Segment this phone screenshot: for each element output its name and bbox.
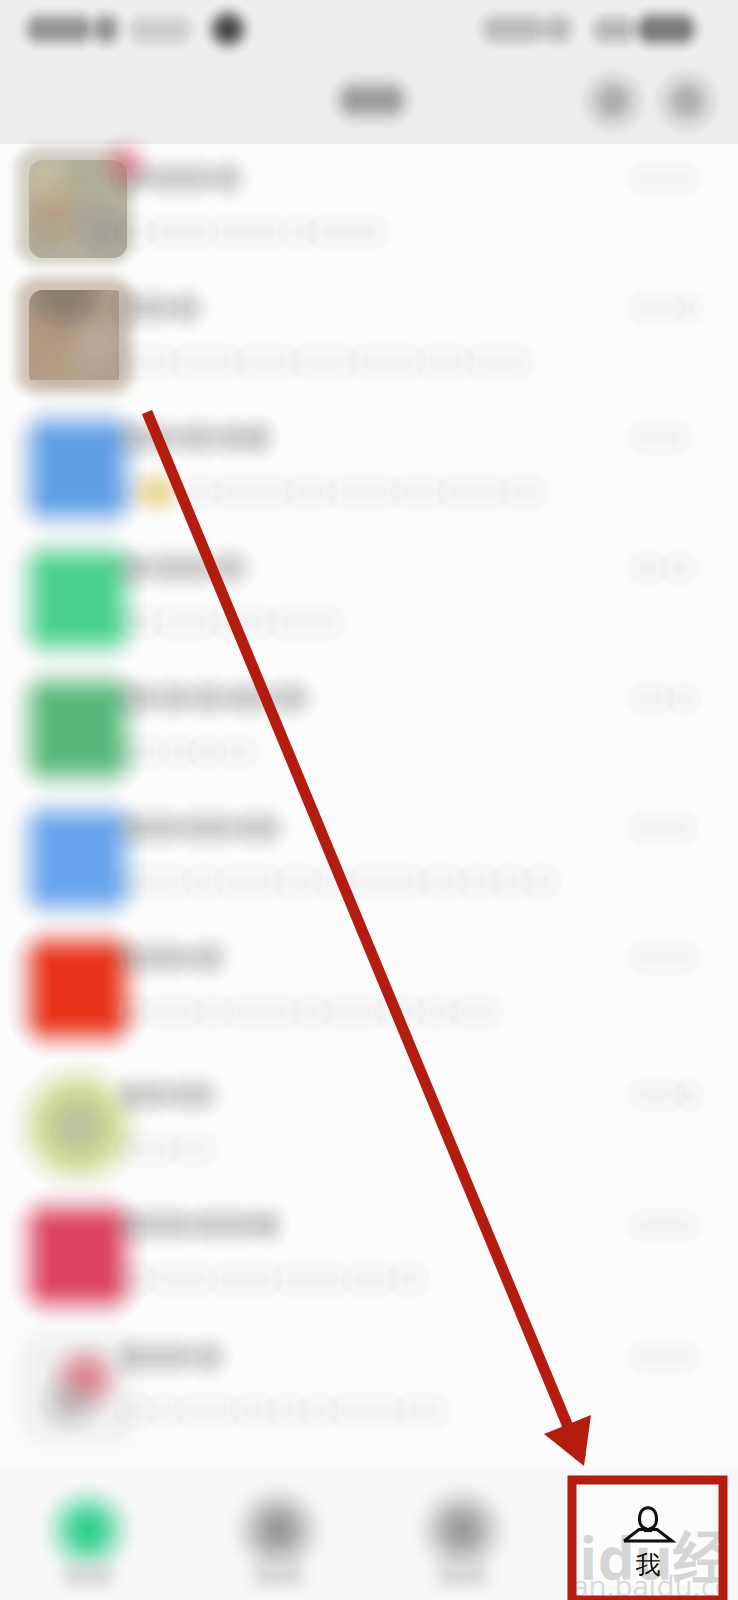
button[interactable]	[0, 0, 738, 1600]
button[interactable]	[0, 0, 738, 1600]
staticText: jingyan.baidu.com	[505, 1566, 738, 1600]
button[interactable]	[0, 0, 738, 1600]
button[interactable]	[0, 0, 738, 1600]
button[interactable]: Search	[0, 0, 80, 80]
button[interactable]: Contacts tab	[186, 1466, 370, 1600]
button[interactable]	[0, 0, 738, 1600]
button[interactable]	[0, 0, 738, 1600]
button[interactable]	[0, 0, 738, 1600]
button[interactable]	[0, 0, 738, 1600]
button[interactable]: Chats tab	[0, 1466, 180, 1600]
button[interactable]	[0, 0, 738, 1600]
button[interactable]: Discover tab	[370, 1466, 554, 1600]
staticText: 我	[635, 1549, 660, 1580]
button[interactable]: Me tab	[579, 1486, 717, 1594]
staticText: Baidu经验	[505, 1518, 738, 1596]
button[interactable]: Add	[0, 0, 80, 80]
button[interactable]	[0, 0, 738, 1600]
